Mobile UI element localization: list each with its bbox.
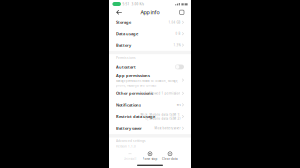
staticText: Allowed 1 permission: [148, 91, 180, 95]
staticText: Data usage: [116, 31, 138, 36]
button[interactable]: Storage: [109, 17, 191, 28]
staticText: Manage permissions related to location, …: [116, 79, 178, 83]
staticText: Notifications: [116, 102, 141, 107]
staticText: (), Mobile data (SIM 2): [145, 117, 180, 120]
button[interactable]: Uninstall: [120, 152, 140, 161]
staticText: App info: [140, 9, 159, 16]
staticText: Wi-Fi, Mobile data (SIM 1): [140, 113, 180, 116]
staticText: 5:51 3.00 K/s: [122, 2, 143, 6]
button[interactable]: Force stop: [140, 152, 160, 161]
button[interactable]: Clear data: [160, 152, 180, 161]
button[interactable]: Notifications: [109, 99, 191, 111]
staticText: 1.3%: [173, 43, 180, 47]
staticText: Battery: [116, 42, 131, 48]
staticText: Advanced settings: [116, 139, 146, 143]
button[interactable]: Restrict data usage: [109, 111, 191, 122]
staticText: Version 1.1.0: [116, 144, 136, 148]
staticText: Yes: [176, 103, 180, 107]
staticText: Restrict data usage: [116, 114, 155, 119]
button[interactable]: App permissions: [109, 73, 191, 88]
staticText: Other permissions: [116, 91, 153, 96]
staticText: 1.04 GB: [168, 20, 180, 24]
staticText: Storage: [116, 20, 131, 25]
button[interactable]: App store: [179, 9, 185, 15]
staticText: Clear data: [162, 157, 178, 161]
staticText: Force stop: [142, 157, 157, 161]
button[interactable]: Other permissions: [109, 88, 191, 99]
staticText: Uninstall: [123, 157, 136, 161]
staticText: phone, messenger and contacts: [116, 84, 156, 87]
button[interactable]: Autostart: [109, 61, 191, 73]
staticText: Battery saver: [116, 126, 142, 131]
staticText: App permissions: [116, 73, 150, 78]
button[interactable]: Battery: [109, 39, 191, 51]
button[interactable]: Back: [115, 9, 123, 16]
staticText: Most battery saver: [154, 126, 180, 130]
staticText: Autostart: [116, 64, 136, 69]
button[interactable]: Data usage: [109, 28, 191, 39]
staticText: Permissions: [116, 56, 136, 60]
button[interactable]: Battery saver: [109, 122, 191, 134]
staticText: 0 B: [175, 32, 180, 35]
